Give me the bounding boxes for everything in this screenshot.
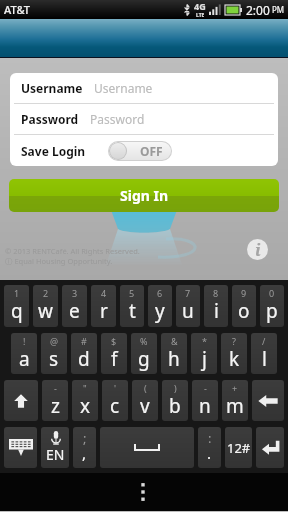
staticText: j [202, 346, 207, 372]
button[interactable]: ) [162, 380, 188, 421]
button[interactable]: ; [73, 427, 96, 468]
button[interactable]: + [222, 380, 248, 421]
staticText: f [111, 346, 118, 372]
staticText: 0 [269, 287, 275, 299]
button[interactable]: Password [10, 104, 278, 134]
staticText: LTE [196, 12, 205, 19]
staticText: e [69, 298, 80, 324]
staticText: Password [21, 111, 79, 127]
staticText: $ [111, 335, 117, 347]
staticText: @ [50, 335, 59, 347]
button[interactable]: - [192, 380, 218, 421]
button[interactable]: 3 [62, 285, 87, 327]
staticText: + [232, 382, 238, 394]
button[interactable]: / [251, 333, 277, 374]
staticText: 2:00 [246, 2, 270, 18]
button[interactable]: ( [132, 380, 158, 421]
button[interactable]: & [161, 333, 187, 374]
button[interactable]: $ [101, 333, 127, 374]
staticText: Username [21, 80, 83, 96]
staticText: " [83, 382, 87, 394]
staticText: m [226, 393, 244, 419]
button[interactable]: # [71, 333, 97, 374]
button[interactable]: " [72, 380, 98, 421]
staticText: 4G [194, 0, 206, 12]
staticText: - [204, 382, 207, 394]
staticText: Sign In [120, 186, 169, 205]
button[interactable]: * [191, 333, 217, 374]
button[interactable]: enter [256, 427, 284, 468]
button[interactable]: 12# [225, 427, 252, 468]
staticText: OFF [140, 143, 163, 159]
staticText: c [110, 393, 120, 419]
staticText: PM [272, 4, 285, 15]
button[interactable]: Information [247, 239, 268, 260]
button[interactable]: More options [130, 479, 156, 505]
staticText: 12# [227, 439, 251, 457]
staticText: ) [174, 382, 177, 394]
staticText: r [100, 298, 108, 324]
staticText: ' [114, 382, 117, 394]
button[interactable]: ! [11, 333, 37, 374]
button[interactable]: 5 [120, 285, 144, 327]
button[interactable]: 9 [232, 285, 256, 327]
button[interactable]: @ [41, 333, 67, 374]
staticText: AT&T [4, 2, 31, 17]
staticText: 5 [129, 287, 135, 299]
button[interactable]: Save Login [10, 135, 278, 166]
button[interactable]: 6 [148, 285, 172, 327]
staticText: % [140, 335, 148, 347]
staticText: ; [83, 429, 87, 447]
staticText: * [202, 335, 207, 347]
staticText: l [262, 346, 267, 372]
staticText: o [238, 298, 250, 324]
button[interactable]: Sign In [9, 179, 279, 212]
button[interactable]: back [252, 380, 284, 421]
staticText: / [262, 335, 266, 347]
button[interactable]: Save Login toggle [109, 142, 171, 160]
staticText: v [140, 393, 150, 419]
staticText: w [38, 298, 53, 324]
button[interactable]: Username [10, 73, 278, 103]
staticText: k [229, 346, 240, 372]
button[interactable]: ' [102, 380, 128, 421]
button[interactable]: space [100, 427, 194, 468]
staticText: : [208, 429, 212, 447]
button[interactable]: shift [4, 380, 38, 421]
staticText: t [129, 298, 136, 324]
staticText: p [266, 298, 278, 324]
staticText: i [255, 239, 261, 260]
staticText: b [169, 393, 181, 419]
button[interactable]: ? [221, 333, 247, 374]
staticText: . [207, 443, 212, 463]
staticText: Save Login [21, 143, 86, 159]
staticText: s [49, 346, 59, 372]
button[interactable]: 8 [204, 285, 228, 327]
staticText: ! [23, 335, 26, 347]
button[interactable]: kbd [4, 427, 37, 468]
staticText: 6 [157, 287, 163, 299]
button[interactable]: 0 [260, 285, 284, 327]
staticText: 4 [101, 287, 107, 299]
button[interactable]: 1 [4, 285, 29, 327]
button[interactable]: 7 [176, 285, 200, 327]
staticText: , [82, 443, 87, 463]
button[interactable]: : [198, 427, 221, 468]
staticText: g [138, 346, 150, 372]
button[interactable]: % [131, 333, 157, 374]
staticText: # [81, 335, 87, 347]
staticText: EN [46, 445, 65, 464]
button[interactable]: 4 [91, 285, 116, 327]
staticText: d [78, 346, 90, 372]
staticText: Password [90, 111, 145, 127]
button[interactable]: mic [41, 427, 69, 468]
button[interactable]: 2 [33, 285, 58, 327]
staticText: & [171, 335, 178, 347]
staticText: ⓘ Equal Housing Opportunity. [5, 256, 113, 266]
button[interactable]: - [42, 380, 68, 421]
staticText: - [54, 382, 57, 394]
staticText: 8 [213, 287, 219, 299]
staticText: ( [144, 382, 147, 394]
staticText: q [11, 298, 23, 324]
staticText: z [51, 393, 60, 419]
